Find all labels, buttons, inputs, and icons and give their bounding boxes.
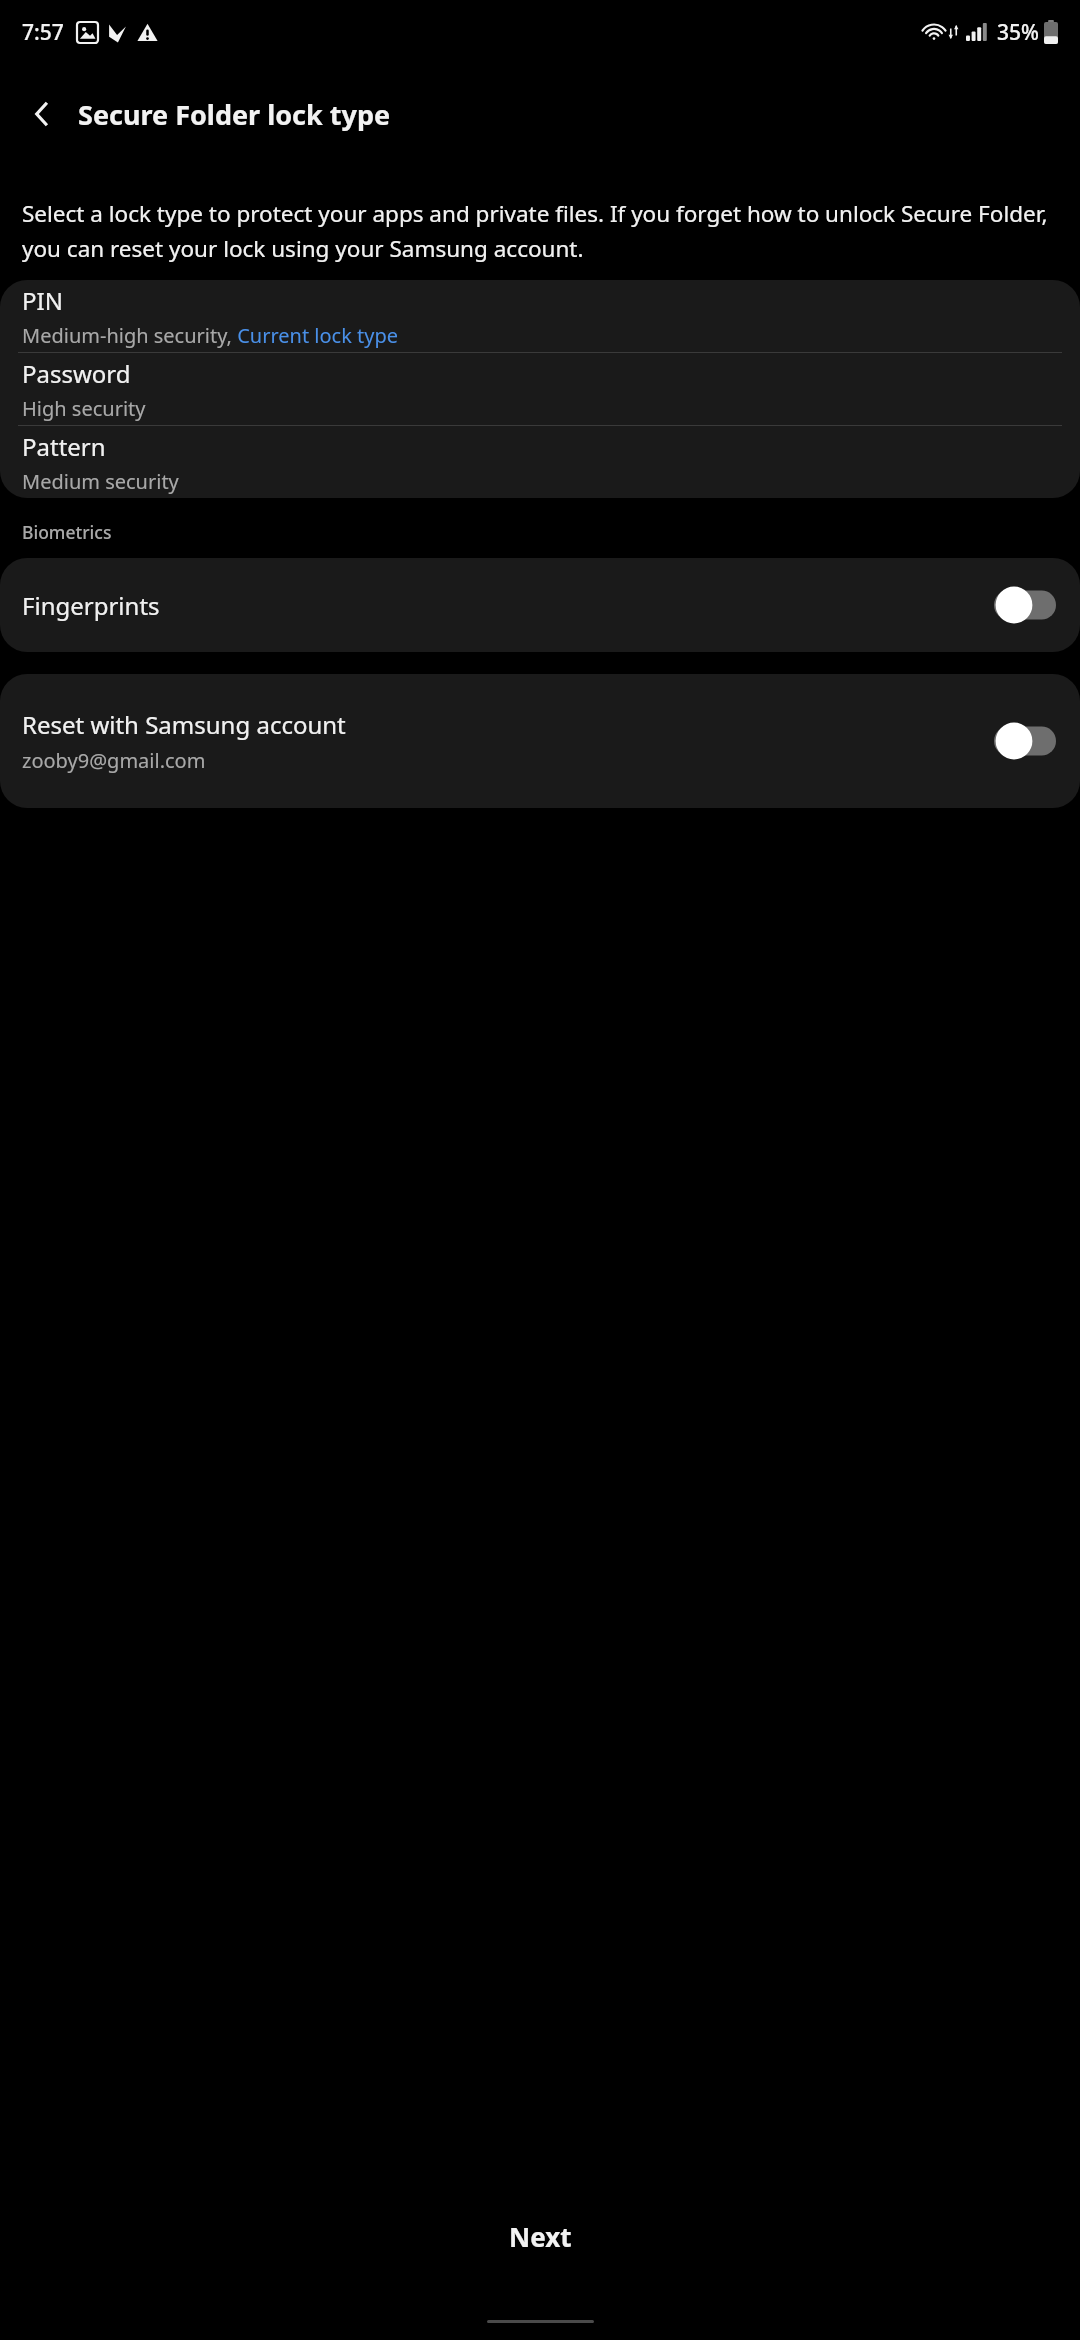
button[interactable]: Reset with Samsung account: [0, 674, 1080, 808]
staticText: 35%: [997, 18, 1039, 47]
staticText: Next: [509, 2219, 572, 2254]
button[interactable]: Toggle: [994, 721, 1056, 761]
staticText: Select a lock type to protect your apps …: [22, 198, 1054, 264]
button[interactable]: Password: [0, 353, 1080, 425]
staticText: zooby9@gmail.com: [22, 747, 206, 774]
button[interactable]: Fingerprints: [0, 558, 1080, 652]
button[interactable]: Toggle: [994, 585, 1056, 625]
staticText: PIN: [22, 284, 63, 317]
staticText: Secure Folder lock type: [78, 96, 391, 133]
staticText: High security: [22, 395, 146, 422]
button[interactable]: Back: [14, 86, 70, 142]
staticText: Fingerprints: [22, 589, 994, 622]
button[interactable]: Next: [0, 2180, 1080, 2292]
staticText: 7:57: [22, 18, 64, 47]
staticText: Reset with Samsung account: [22, 708, 346, 741]
staticText: Biometrics: [22, 520, 112, 544]
staticText: Pattern: [22, 430, 106, 463]
staticText: Medium security: [22, 468, 179, 495]
button[interactable]: Pattern: [0, 426, 1080, 498]
button[interactable]: PIN: [0, 280, 1080, 352]
staticText: Medium-high security, Current lock type: [22, 322, 399, 349]
staticText: Password: [22, 357, 131, 390]
